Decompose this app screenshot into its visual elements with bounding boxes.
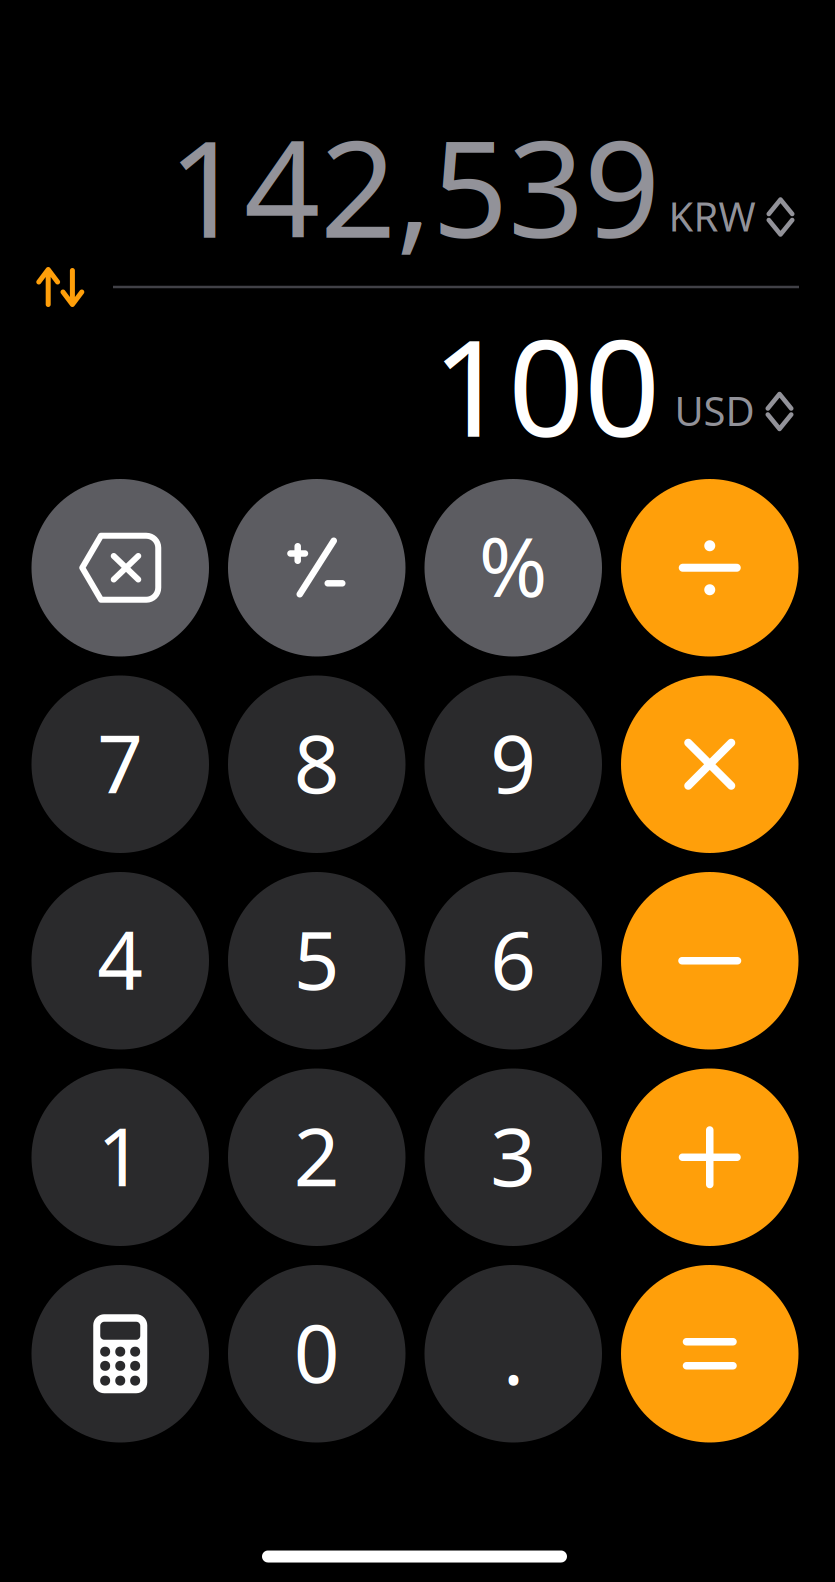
button[interactable]: Toggle sign (228, 479, 405, 656)
staticText: 7 (97, 709, 143, 815)
staticText: 6 (490, 906, 536, 1012)
button[interactable]: Change result currency, Korean Won (668, 190, 794, 244)
staticText: 100 (432, 296, 660, 474)
staticText: USD (674, 384, 754, 437)
button[interactable]: Multiply (621, 675, 798, 853)
staticText: 1 (97, 1102, 143, 1208)
staticText: 5 (294, 906, 340, 1012)
button[interactable]: 9 (424, 675, 602, 853)
button[interactable]: 3 (424, 1068, 602, 1246)
staticText: 8 (294, 709, 340, 815)
staticText: 4 (97, 906, 143, 1012)
staticText: KRW (668, 189, 755, 242)
button[interactable]: Add (621, 1068, 798, 1246)
staticText: . (503, 1301, 524, 1407)
button[interactable]: Calculator (31, 1265, 209, 1442)
button[interactable]: Equals (621, 1265, 798, 1442)
button[interactable]: 7 (31, 675, 209, 853)
staticText: 142,539 (168, 97, 660, 275)
button[interactable]: Swap currencies (22, 253, 98, 321)
button[interactable]: 6 (424, 872, 602, 1049)
button[interactable]: . (424, 1265, 602, 1442)
button[interactable]: 5 (228, 872, 405, 1049)
button[interactable]: 1 (31, 1068, 209, 1246)
button[interactable]: 8 (228, 675, 405, 853)
staticText: 9 (490, 709, 536, 815)
button[interactable]: Change input currency, US Dollars (674, 384, 793, 438)
button[interactable]: Divide (621, 479, 798, 656)
button[interactable]: 4 (31, 872, 209, 1049)
button[interactable]: 2 (228, 1068, 405, 1246)
staticText: 2 (294, 1102, 340, 1208)
button[interactable]: 0 (228, 1265, 405, 1442)
button[interactable]: Delete (31, 479, 209, 656)
button[interactable]: Subtract (621, 872, 798, 1049)
staticText: 3 (490, 1102, 536, 1208)
button[interactable]: Percent (424, 479, 602, 656)
staticText: % (479, 510, 548, 620)
staticText: 0 (294, 1299, 340, 1405)
